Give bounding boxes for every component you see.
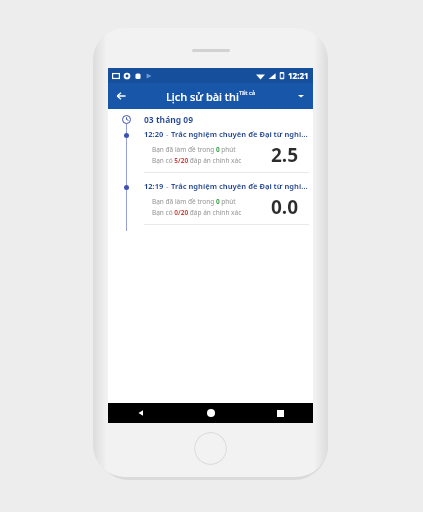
- staticText: 12:21: [288, 70, 309, 81]
- button[interactable]: Recent apps: [269, 403, 291, 423]
- staticText: Tất cả: [239, 89, 256, 97]
- staticText: Lịch sử bài thi: [166, 89, 239, 104]
- button[interactable]: 12:19: [108, 181, 313, 227]
- staticText: Trắc nghiệm chuyên đề Đại từ nghi vấ…: [171, 129, 309, 139]
- button[interactable]: Back: [108, 83, 134, 109]
- staticText: 0.0: [271, 194, 299, 220]
- staticText: Trắc nghiệm chuyên đề Đại từ nghi vấn…: [171, 181, 309, 191]
- staticText: -: [164, 181, 171, 191]
- button[interactable]: Back: [130, 403, 152, 423]
- staticText: 12:20: [144, 129, 164, 139]
- staticText: Bạn có 0/20 đáp án chính xác: [152, 208, 242, 217]
- staticText: 2.5: [271, 142, 299, 168]
- staticText: 03 tháng 09: [144, 114, 194, 126]
- staticText: -: [164, 129, 171, 139]
- staticText: Bạn có 5/20 đáp án chính xác: [152, 156, 242, 165]
- button[interactable]: Home: [200, 403, 222, 423]
- button[interactable]: Filter: [289, 84, 313, 108]
- staticText: 12:19: [144, 181, 164, 191]
- staticText: Bạn đã làm đề trong 0 phút: [152, 197, 236, 206]
- staticText: Bạn đã làm đề trong 0 phút: [152, 145, 236, 154]
- button[interactable]: 12:20: [108, 129, 313, 175]
